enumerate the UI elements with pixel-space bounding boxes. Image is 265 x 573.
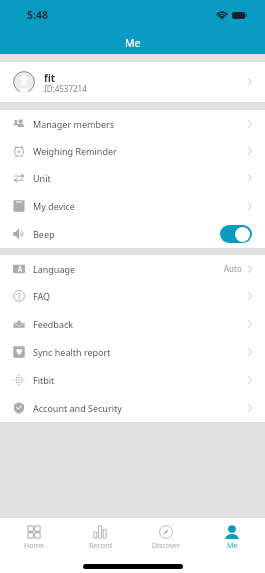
staticText: Auto bbox=[224, 263, 242, 274]
staticText: Me bbox=[227, 541, 238, 551]
staticText: Record bbox=[89, 541, 112, 551]
staticText: Language bbox=[33, 263, 76, 275]
button[interactable]: Feedback bbox=[0, 310, 265, 338]
button[interactable]: Me bbox=[199, 518, 265, 554]
staticText: Manager members bbox=[33, 118, 115, 130]
staticText: Weighing Reminder bbox=[33, 145, 117, 157]
button[interactable]: Language bbox=[0, 255, 265, 282]
staticText: Feedback bbox=[33, 318, 74, 330]
button[interactable]: My device bbox=[0, 192, 265, 220]
button[interactable]: Manager members bbox=[0, 110, 265, 137]
button[interactable]: Record bbox=[67, 518, 133, 554]
button[interactable]: Beep toggle bbox=[220, 225, 252, 243]
staticText: fit bbox=[44, 71, 56, 85]
button[interactable]: fit bbox=[0, 62, 265, 102]
staticText: Beep bbox=[33, 228, 55, 240]
staticText: Sync health report bbox=[33, 346, 111, 358]
staticText: Account and Security bbox=[33, 402, 122, 414]
staticText: Unit bbox=[33, 172, 51, 184]
staticText: Fitbit bbox=[33, 374, 55, 386]
staticText: Me bbox=[125, 36, 141, 50]
staticText: Home bbox=[24, 541, 44, 551]
button[interactable]: Fitbit bbox=[0, 366, 265, 394]
staticText: Discover bbox=[152, 541, 181, 551]
staticText: ID:4537214 bbox=[44, 83, 87, 94]
button[interactable]: Home bbox=[0, 518, 67, 554]
staticText: My device bbox=[33, 200, 75, 212]
button[interactable]: Unit bbox=[0, 164, 265, 192]
button[interactable]: Beep bbox=[0, 220, 265, 248]
button[interactable]: Sync health report bbox=[0, 338, 265, 366]
button[interactable]: Discover bbox=[133, 518, 199, 554]
button[interactable]: FAQ bbox=[0, 282, 265, 310]
staticText: 5:48 bbox=[27, 8, 48, 22]
button[interactable]: Weighing Reminder bbox=[0, 137, 265, 164]
button[interactable]: Account and Security bbox=[0, 394, 265, 422]
staticText: FAQ bbox=[33, 290, 51, 302]
